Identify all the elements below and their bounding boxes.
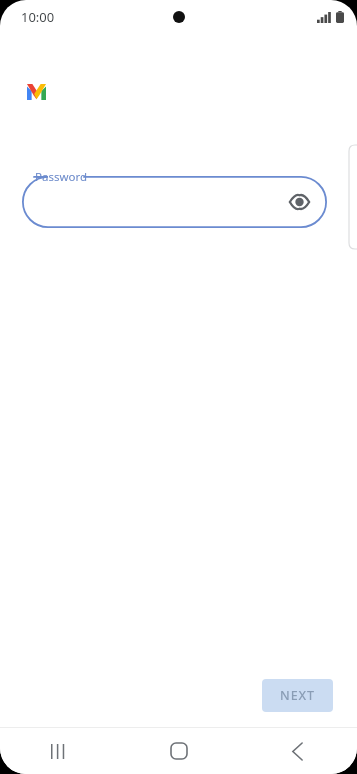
button[interactable]: NEXT <box>262 679 333 712</box>
button[interactable]: Show password <box>282 185 316 219</box>
button[interactable]: Back <box>238 728 357 774</box>
staticText: Password <box>35 169 88 185</box>
button[interactable]: Show password <box>22 176 327 228</box>
staticText: NEXT <box>280 687 315 704</box>
button[interactable]: Recent apps <box>0 728 119 774</box>
button[interactable]: Home <box>119 728 238 774</box>
staticText: 10:00 <box>21 8 55 26</box>
